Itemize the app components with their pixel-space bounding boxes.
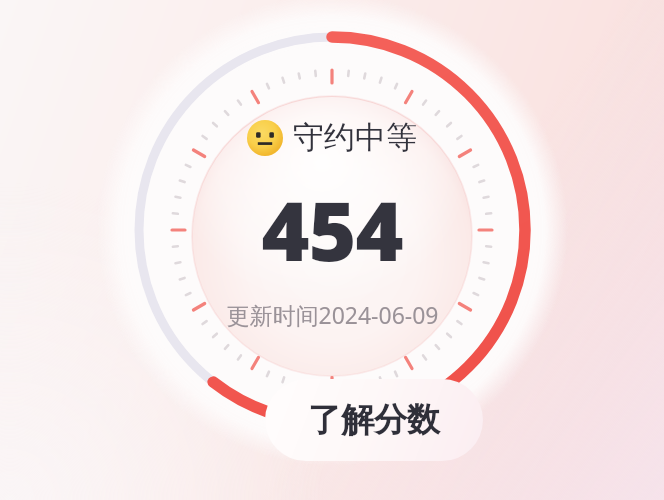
staticText: 守约中等 (293, 118, 417, 157)
staticText: 454 (261, 173, 403, 285)
button[interactable]: 了解分数 (265, 379, 483, 461)
staticText: 更新时间2024-06-09 (226, 299, 439, 330)
staticText: 了解分数 (308, 399, 440, 441)
